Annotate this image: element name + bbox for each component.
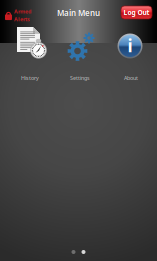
staticText: About bbox=[124, 74, 138, 82]
button[interactable] bbox=[3, 26, 53, 78]
button[interactable]: Log Out bbox=[121, 6, 152, 19]
staticText: Log Out bbox=[123, 8, 149, 17]
staticText: History bbox=[21, 74, 39, 82]
staticText: i bbox=[127, 34, 132, 57]
staticText: Armed bbox=[14, 8, 31, 15]
staticText: Alerts bbox=[14, 16, 30, 23]
staticText: Settings bbox=[70, 74, 90, 82]
staticText: Main Menu bbox=[57, 8, 100, 18]
button[interactable] bbox=[54, 26, 104, 78]
button[interactable] bbox=[105, 26, 155, 78]
